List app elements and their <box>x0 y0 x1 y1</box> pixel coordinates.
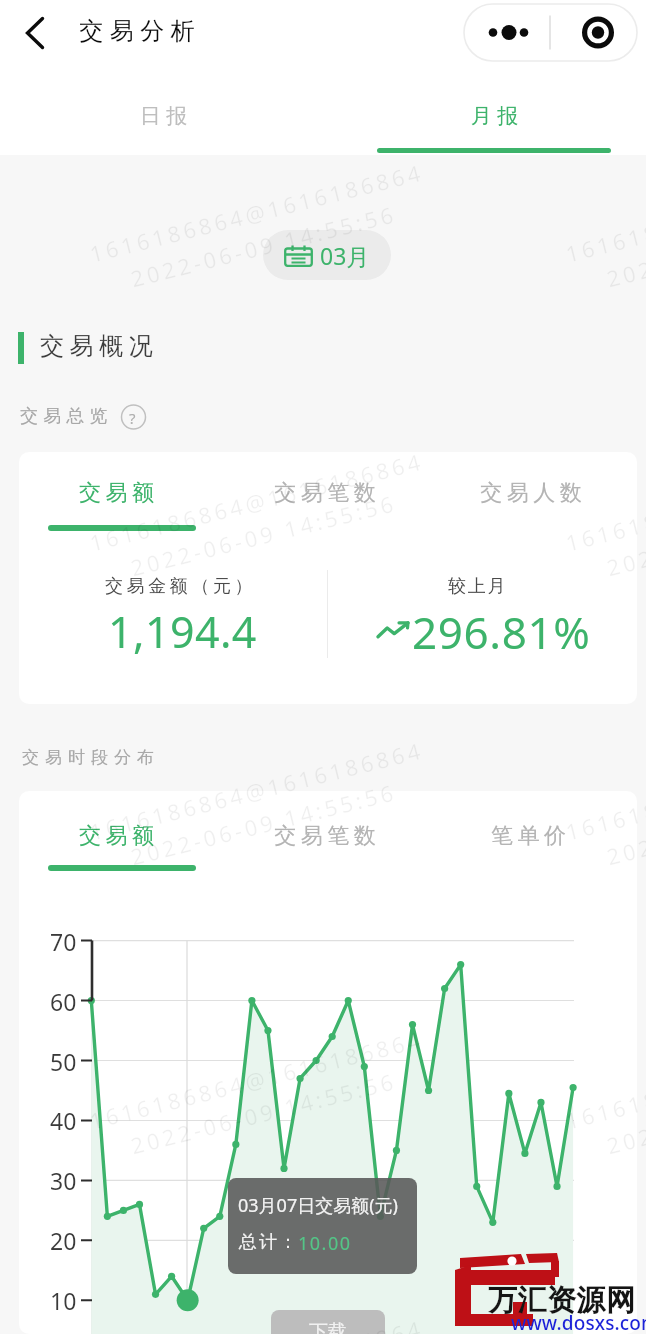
button[interactable]: 交易额 <box>19 452 225 552</box>
staticText: 2022-06-09 14:55:56 <box>128 776 400 871</box>
staticText: 1616186864@1616186864 <box>562 445 646 558</box>
staticText: 交易额 <box>79 479 159 507</box>
staticText: 2022-06-09 14:55:56 <box>604 198 646 293</box>
staticText: 交易分析 <box>76 16 198 46</box>
staticText: 30 <box>50 1165 77 1195</box>
staticText: 交易概况 <box>40 331 159 361</box>
button[interactable]: 交易人数 <box>431 452 637 552</box>
staticText: 60 <box>50 986 77 1016</box>
staticText: 交易人数 <box>478 479 584 507</box>
button[interactable]: 日报 <box>0 85 323 155</box>
staticText: 交易时段分布 <box>19 747 157 768</box>
staticText: 1616186864@1616186864 <box>86 156 426 269</box>
staticText: 1616186864@1616186864 <box>86 1023 426 1136</box>
staticText: 交易总览 <box>20 405 113 428</box>
button[interactable]: 交易笔数 <box>225 791 431 891</box>
staticText: 1616186864@1616186864 <box>562 734 646 847</box>
staticText: 2022-06-09 14:55:56 <box>604 776 646 871</box>
staticText: 交易笔数 <box>272 822 378 850</box>
staticText: 70 <box>50 926 77 956</box>
button[interactable]: Back <box>8 6 62 60</box>
staticText: 日报 <box>137 103 190 129</box>
button[interactable]: More and close <box>464 4 637 61</box>
staticText: 交易金额（元） <box>105 575 257 598</box>
button[interactable]: 月报 <box>323 85 646 155</box>
staticText: 2022-06-09 14:55:56 <box>604 1065 646 1160</box>
staticText: 总计： <box>238 1231 298 1254</box>
staticText: 1616186864@1616186864 <box>86 1312 426 1334</box>
staticText: www.dosxs.com <box>511 1310 646 1334</box>
staticText: 1616186864@1616186864 <box>562 1312 646 1334</box>
staticText: 月报 <box>468 103 521 129</box>
staticText: ? <box>129 408 136 428</box>
staticText: 10.00 <box>298 1231 352 1256</box>
staticText: 03月 <box>320 240 370 271</box>
staticText: 2022-06-09 14:55:56 <box>604 487 646 582</box>
staticText: 1616186864@1616186864 <box>562 1023 646 1136</box>
staticText: 03月07日交易额(元) <box>238 1193 398 1218</box>
button[interactable]: 交易笔数 <box>225 452 431 552</box>
button[interactable]: 下载 <box>271 1310 385 1334</box>
staticText: 10 <box>50 1285 77 1315</box>
staticText: 万汇资源网 <box>488 1282 636 1319</box>
staticText: 2022-06-09 14:55:56 <box>128 198 400 293</box>
staticText: 2022-06-09 14:55:56 <box>128 1065 400 1160</box>
staticText: 20 <box>50 1225 77 1255</box>
staticText: 下载 <box>309 1320 347 1334</box>
staticText: 40 <box>50 1105 77 1135</box>
staticText: 2022-06-09 14:55:56 <box>128 487 400 582</box>
staticText: 较上月 <box>448 575 508 598</box>
staticText: 1616186864@1616186864 <box>86 734 426 847</box>
staticText: 1616186864@1616186864 <box>86 445 426 558</box>
staticText: 交易额 <box>79 822 159 850</box>
button[interactable]: 03月 <box>263 230 391 280</box>
staticText: 50 <box>50 1046 77 1076</box>
staticText: 296.81% <box>412 602 591 662</box>
button[interactable]: 笔单价 <box>431 791 637 891</box>
staticText: 1,194.4 <box>108 602 257 661</box>
staticText: 交易笔数 <box>272 479 378 507</box>
staticText: 笔单价 <box>491 822 571 850</box>
button[interactable]: 交易额 <box>19 791 225 891</box>
